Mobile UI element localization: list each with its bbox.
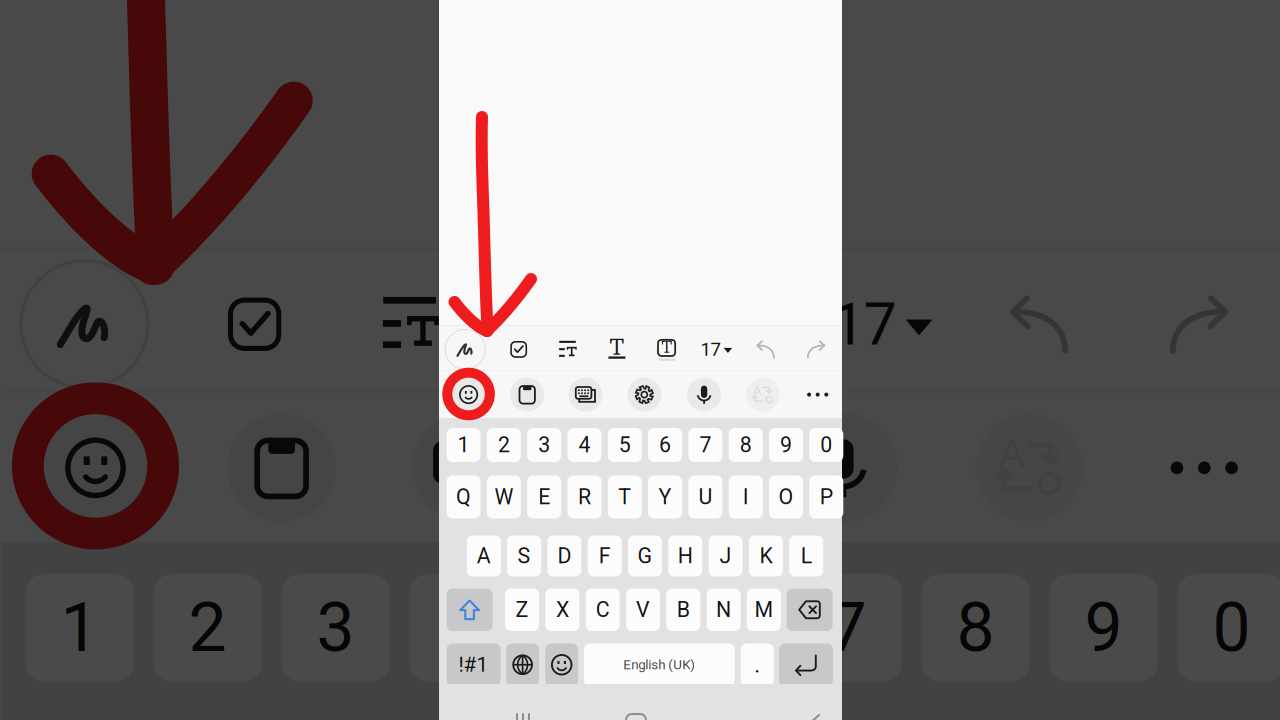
staticText: 5 — [619, 432, 631, 457]
button[interactable]: J — [709, 535, 743, 576]
staticText: D — [557, 543, 571, 568]
button[interactable]: Handwriting — [443, 327, 487, 371]
button[interactable]: P — [809, 475, 843, 518]
button[interactable] — [447, 588, 493, 631]
staticText: 3 — [538, 432, 550, 457]
button[interactable]: Keyboard modes — [565, 375, 605, 415]
button[interactable]: 2 — [487, 428, 521, 462]
button[interactable]: G — [628, 535, 662, 576]
button[interactable]: T — [608, 475, 642, 518]
staticText: O — [778, 484, 793, 509]
button[interactable]: Paragraph style — [545, 328, 587, 370]
button[interactable] — [787, 588, 833, 631]
button[interactable] — [506, 643, 539, 686]
button[interactable]: M — [747, 588, 781, 631]
staticText: 6 — [659, 432, 671, 457]
button[interactable]: S — [507, 535, 541, 576]
staticText: L — [801, 543, 812, 568]
button[interactable]: 5 — [608, 428, 642, 462]
button[interactable]: . — [741, 643, 774, 686]
button[interactable]: Emoji — [449, 375, 489, 415]
staticText: A — [477, 543, 491, 568]
staticText: English (UK) — [623, 657, 695, 672]
button[interactable]: Checklist — [498, 328, 540, 370]
button[interactable]: Keyboard settings — [624, 375, 664, 415]
button[interactable]: B — [666, 588, 700, 631]
staticText: K — [759, 543, 772, 568]
staticText: 4 — [578, 432, 590, 457]
staticText: M — [754, 597, 773, 622]
staticText: P — [820, 484, 833, 509]
button[interactable]: English (UK) — [584, 643, 735, 686]
button[interactable]: Clipboard — [507, 375, 547, 415]
button[interactable] — [779, 643, 833, 686]
button[interactable]: L — [789, 535, 823, 576]
staticText: G — [637, 543, 652, 568]
staticText: 1 — [458, 432, 470, 457]
button[interactable]: Font style — [596, 328, 638, 370]
staticText: 0 — [820, 432, 832, 457]
button[interactable]: W — [487, 475, 521, 518]
button[interactable]: More options — [798, 375, 838, 415]
button[interactable]: O — [769, 475, 803, 518]
staticText: F — [599, 543, 611, 568]
staticText: 17 — [700, 338, 720, 360]
button[interactable]: F — [588, 535, 622, 576]
button[interactable]: E — [527, 475, 561, 518]
button[interactable]: 4 — [567, 428, 601, 462]
staticText: V — [636, 597, 650, 622]
button[interactable]: 6 — [648, 428, 682, 462]
button[interactable]: 3 — [527, 428, 561, 462]
button[interactable]: !#1 — [447, 643, 501, 686]
staticText: H — [678, 543, 693, 568]
staticText: S — [518, 543, 531, 568]
staticText: 2 — [498, 432, 510, 457]
staticText: B — [677, 597, 690, 622]
staticText: R — [578, 484, 591, 509]
button[interactable]: Y — [648, 475, 682, 518]
button[interactable]: D — [547, 535, 581, 576]
button[interactable]: 8 — [729, 428, 763, 462]
button[interactable]: Voice typing — [684, 375, 724, 415]
staticText: Q — [456, 484, 471, 509]
button[interactable]: Text box — [646, 328, 688, 370]
staticText: T — [661, 338, 672, 356]
button[interactable]: Z — [505, 588, 539, 631]
staticText: A — [753, 382, 762, 398]
button[interactable]: 7 — [688, 428, 722, 462]
button[interactable]: Translate — [743, 375, 783, 415]
button[interactable]: V — [626, 588, 660, 631]
staticText: U — [698, 484, 712, 509]
button[interactable]: N — [707, 588, 741, 631]
button[interactable]: 17 — [693, 327, 739, 371]
staticText: T — [609, 334, 625, 360]
staticText: 9 — [780, 432, 792, 457]
button[interactable]: Undo — [745, 328, 787, 370]
staticText: X — [556, 597, 569, 622]
button[interactable]: C — [586, 588, 620, 631]
button[interactable]: A — [467, 535, 501, 576]
button[interactable]: H — [668, 535, 702, 576]
button[interactable]: 1 — [447, 428, 481, 462]
button[interactable]: Redo — [795, 328, 837, 370]
staticText: T — [618, 484, 631, 509]
button[interactable]: 9 — [769, 428, 803, 462]
button[interactable]: K — [749, 535, 783, 576]
staticText: W — [494, 484, 513, 509]
staticText: J — [720, 543, 732, 568]
staticText: N — [716, 597, 731, 622]
button[interactable]: 0 — [809, 428, 843, 462]
staticText: !#1 — [459, 653, 489, 677]
staticText: E — [538, 484, 550, 509]
staticText: Y — [659, 484, 672, 509]
button[interactable]: X — [545, 588, 579, 631]
button[interactable]: R — [567, 475, 601, 518]
button[interactable]: I — [729, 475, 763, 518]
staticText: Z — [516, 597, 529, 622]
button[interactable]: U — [688, 475, 722, 518]
button[interactable] — [545, 643, 578, 686]
staticText: . — [754, 651, 760, 678]
button[interactable]: Q — [447, 475, 481, 518]
staticText: C — [596, 597, 610, 622]
staticText: 8 — [740, 432, 752, 457]
